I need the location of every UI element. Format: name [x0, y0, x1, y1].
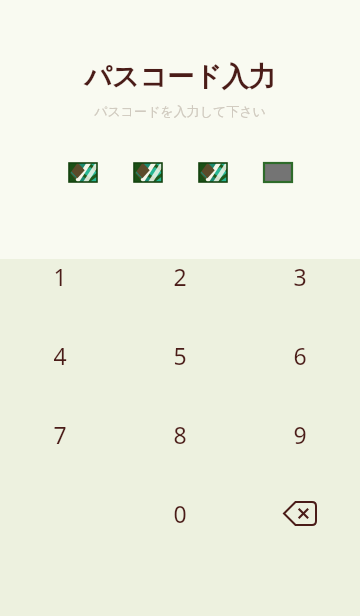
staticText: 4 — [53, 340, 67, 371]
staticText: 1 — [53, 261, 67, 292]
button[interactable]: 6 — [240, 316, 360, 395]
staticText: 3 — [293, 261, 307, 292]
staticText: 8 — [173, 419, 187, 450]
button[interactable]: 8 — [120, 395, 240, 474]
staticText: パスコード入力 — [0, 60, 360, 94]
button[interactable]: 1 — [0, 237, 120, 316]
staticText: 0 — [173, 498, 187, 529]
button[interactable]: 2 — [120, 237, 240, 316]
staticText: 9 — [293, 419, 307, 450]
button[interactable]: Delete — [240, 474, 360, 553]
button[interactable]: 7 — [0, 395, 120, 474]
button[interactable]: 0 — [120, 474, 240, 553]
staticText: 7 — [53, 419, 67, 450]
staticText: 5 — [173, 340, 187, 371]
staticText: 6 — [293, 340, 307, 371]
staticText: パスコードを入力して下さい — [0, 103, 360, 119]
button[interactable]: 9 — [240, 395, 360, 474]
button[interactable]: 3 — [240, 237, 360, 316]
button[interactable]: 5 — [120, 316, 240, 395]
staticText: 2 — [173, 261, 187, 292]
button[interactable]: 4 — [0, 316, 120, 395]
other: Delete — [283, 501, 317, 526]
